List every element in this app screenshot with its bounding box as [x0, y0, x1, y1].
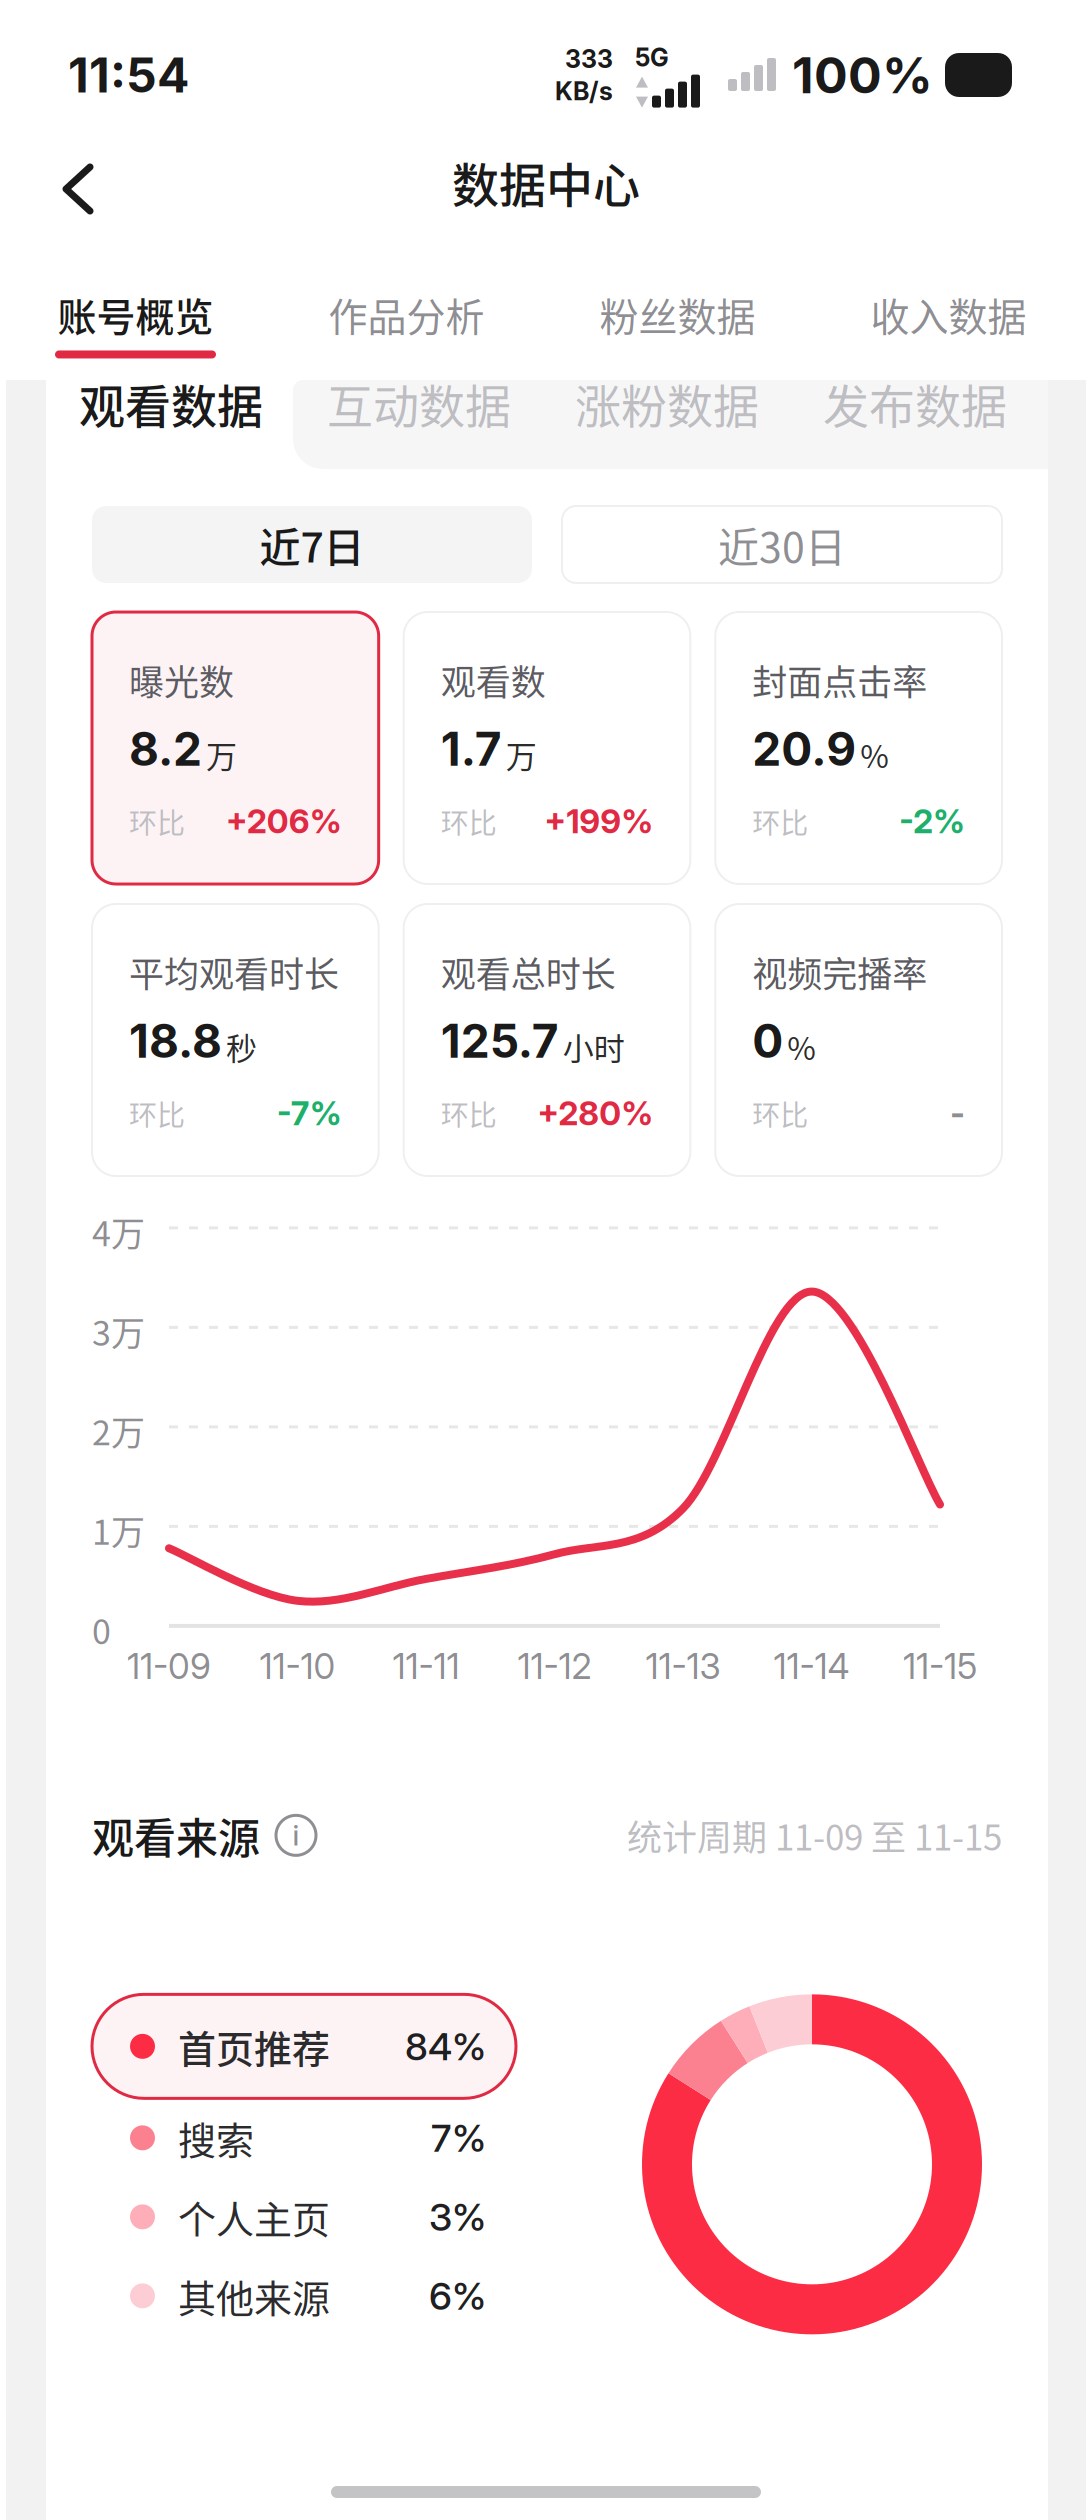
button[interactable]: 发布数据: [791, 380, 1039, 469]
button[interactable]: 观看数: [404, 612, 690, 884]
staticText: 其他来源: [178, 2268, 330, 2323]
staticText: %: [860, 732, 889, 777]
button[interactable]: 互动数据: [295, 380, 543, 469]
staticText: 11-15: [903, 1645, 977, 1687]
staticText: 11-12: [517, 1645, 591, 1687]
staticText: 1.7: [441, 721, 502, 777]
staticText: KB/s: [555, 76, 613, 106]
staticText: 视频完播率: [752, 947, 927, 997]
staticText: 个人主页: [178, 2189, 330, 2244]
button[interactable]: 观看数据: [47, 380, 295, 469]
staticText: 3%: [429, 2194, 486, 2240]
staticText: i: [292, 1818, 299, 1852]
staticText: 万: [206, 732, 237, 777]
button[interactable]: 视频完播率: [715, 904, 1002, 1176]
button[interactable]: 封面点击率: [715, 612, 1002, 884]
staticText: -: [950, 1093, 965, 1133]
staticText: -7%: [277, 1093, 342, 1133]
staticText: 20.9: [752, 721, 856, 777]
staticText: 收入数据: [870, 286, 1026, 342]
staticText: 环比: [441, 801, 497, 841]
staticText: 环比: [752, 1093, 808, 1133]
staticText: 11-14: [773, 1645, 849, 1687]
staticText: 搜索: [178, 2110, 254, 2165]
button[interactable]: 首页推荐: [92, 1994, 516, 2098]
staticText: 11-10: [259, 1645, 335, 1687]
button[interactable]: 涨粉数据: [543, 380, 791, 469]
staticText: 3万: [92, 1306, 145, 1356]
staticText: 环比: [752, 801, 808, 841]
staticText: 8.2: [129, 721, 202, 777]
staticText: 近7日: [259, 515, 364, 574]
staticText: 首页推荐: [178, 2019, 330, 2074]
staticText: 统计周期 11-09 至 11-15: [627, 1810, 1002, 1861]
staticText: 发布数据: [823, 370, 1007, 437]
staticText: 作品分析: [328, 286, 484, 342]
button[interactable]: 近7日: [92, 506, 532, 583]
staticText: 近30日: [718, 515, 846, 574]
staticText: 粉丝数据: [599, 286, 755, 342]
button[interactable]: 观看总时长: [404, 904, 690, 1176]
staticText: 2万: [92, 1406, 145, 1455]
staticText: 账号概览: [57, 286, 213, 342]
button[interactable]: 近30日: [562, 506, 1002, 583]
staticText: 小时: [563, 1024, 625, 1069]
staticText: 环比: [441, 1093, 497, 1133]
staticText: 6%: [429, 2273, 486, 2319]
button[interactable]: Back: [0, 130, 126, 250]
staticText: 观看数: [441, 655, 546, 705]
staticText: 100%: [792, 45, 933, 105]
button[interactable]: 账号概览: [0, 250, 271, 380]
staticText: 涨粉数据: [575, 370, 759, 437]
staticText: 封面点击率: [752, 655, 927, 705]
staticText: 观看来源: [92, 1805, 260, 1866]
staticText: 7%: [431, 2115, 486, 2161]
staticText: 秒: [226, 1024, 257, 1069]
staticText: 万: [506, 732, 537, 777]
button[interactable]: 个人主页: [92, 2177, 516, 2256]
staticText: 0: [92, 1605, 111, 1654]
staticText: 环比: [129, 801, 185, 841]
staticText: 125.7: [441, 1013, 559, 1069]
staticText: 11-11: [392, 1645, 459, 1687]
staticText: 4万: [92, 1207, 145, 1256]
staticText: 11-13: [645, 1645, 720, 1687]
staticText: 曝光数: [129, 655, 234, 705]
button[interactable]: 平均观看时长: [92, 904, 379, 1176]
button[interactable]: 曝光数: [92, 612, 379, 884]
staticText: 5G: [635, 42, 669, 73]
staticText: 11:54: [68, 46, 189, 104]
staticText: 11-09: [127, 1645, 211, 1687]
staticText: 0: [752, 1013, 783, 1069]
staticText: 333: [565, 44, 613, 74]
staticText: +206%: [226, 801, 342, 841]
staticText: +280%: [537, 1093, 653, 1133]
staticText: 18.8: [129, 1013, 222, 1069]
staticText: 平均观看时长: [129, 947, 339, 997]
staticText: 互动数据: [327, 370, 511, 437]
staticText: -2%: [899, 801, 965, 841]
staticText: 观看数据: [79, 370, 263, 437]
button[interactable]: 收入数据: [813, 250, 1084, 380]
button[interactable]: 粉丝数据: [542, 250, 813, 380]
staticText: +199%: [544, 801, 653, 841]
staticText: 观看总时长: [441, 947, 616, 997]
button[interactable]: 其他来源: [92, 2256, 516, 2335]
button[interactable]: 搜索: [92, 2098, 516, 2177]
button[interactable]: Info: [276, 1815, 316, 1855]
staticText: 数据中心: [452, 148, 640, 216]
button[interactable]: 作品分析: [271, 250, 542, 380]
staticText: 1万: [92, 1505, 145, 1555]
staticText: %: [787, 1024, 816, 1069]
staticText: 环比: [129, 1093, 185, 1133]
staticText: 84%: [405, 2023, 486, 2069]
